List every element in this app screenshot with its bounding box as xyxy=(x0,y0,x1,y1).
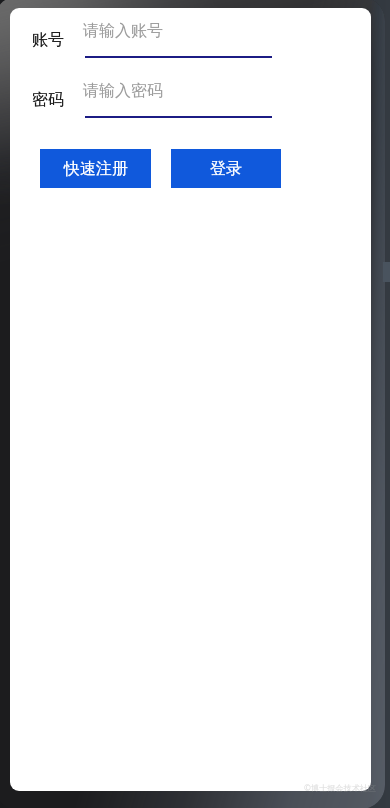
staticText: 密码 xyxy=(32,90,64,110)
staticText: 账号 xyxy=(32,30,64,50)
button[interactable]: 快速注册 xyxy=(40,149,151,188)
staticText: 请输入账号 xyxy=(83,21,163,41)
button[interactable]: 密码输入框 xyxy=(75,76,281,118)
button[interactable]: 登录 xyxy=(171,149,281,188)
staticText: 快速注册 xyxy=(64,159,128,179)
staticText: 登录 xyxy=(210,159,242,179)
staticText: 请输入密码 xyxy=(83,81,163,101)
staticText: 密码 xyxy=(32,90,64,110)
staticText: ©博士报会技术社区 xyxy=(304,782,377,793)
staticText: 账号 xyxy=(32,30,64,50)
button[interactable]: 账号输入框 xyxy=(75,16,281,58)
